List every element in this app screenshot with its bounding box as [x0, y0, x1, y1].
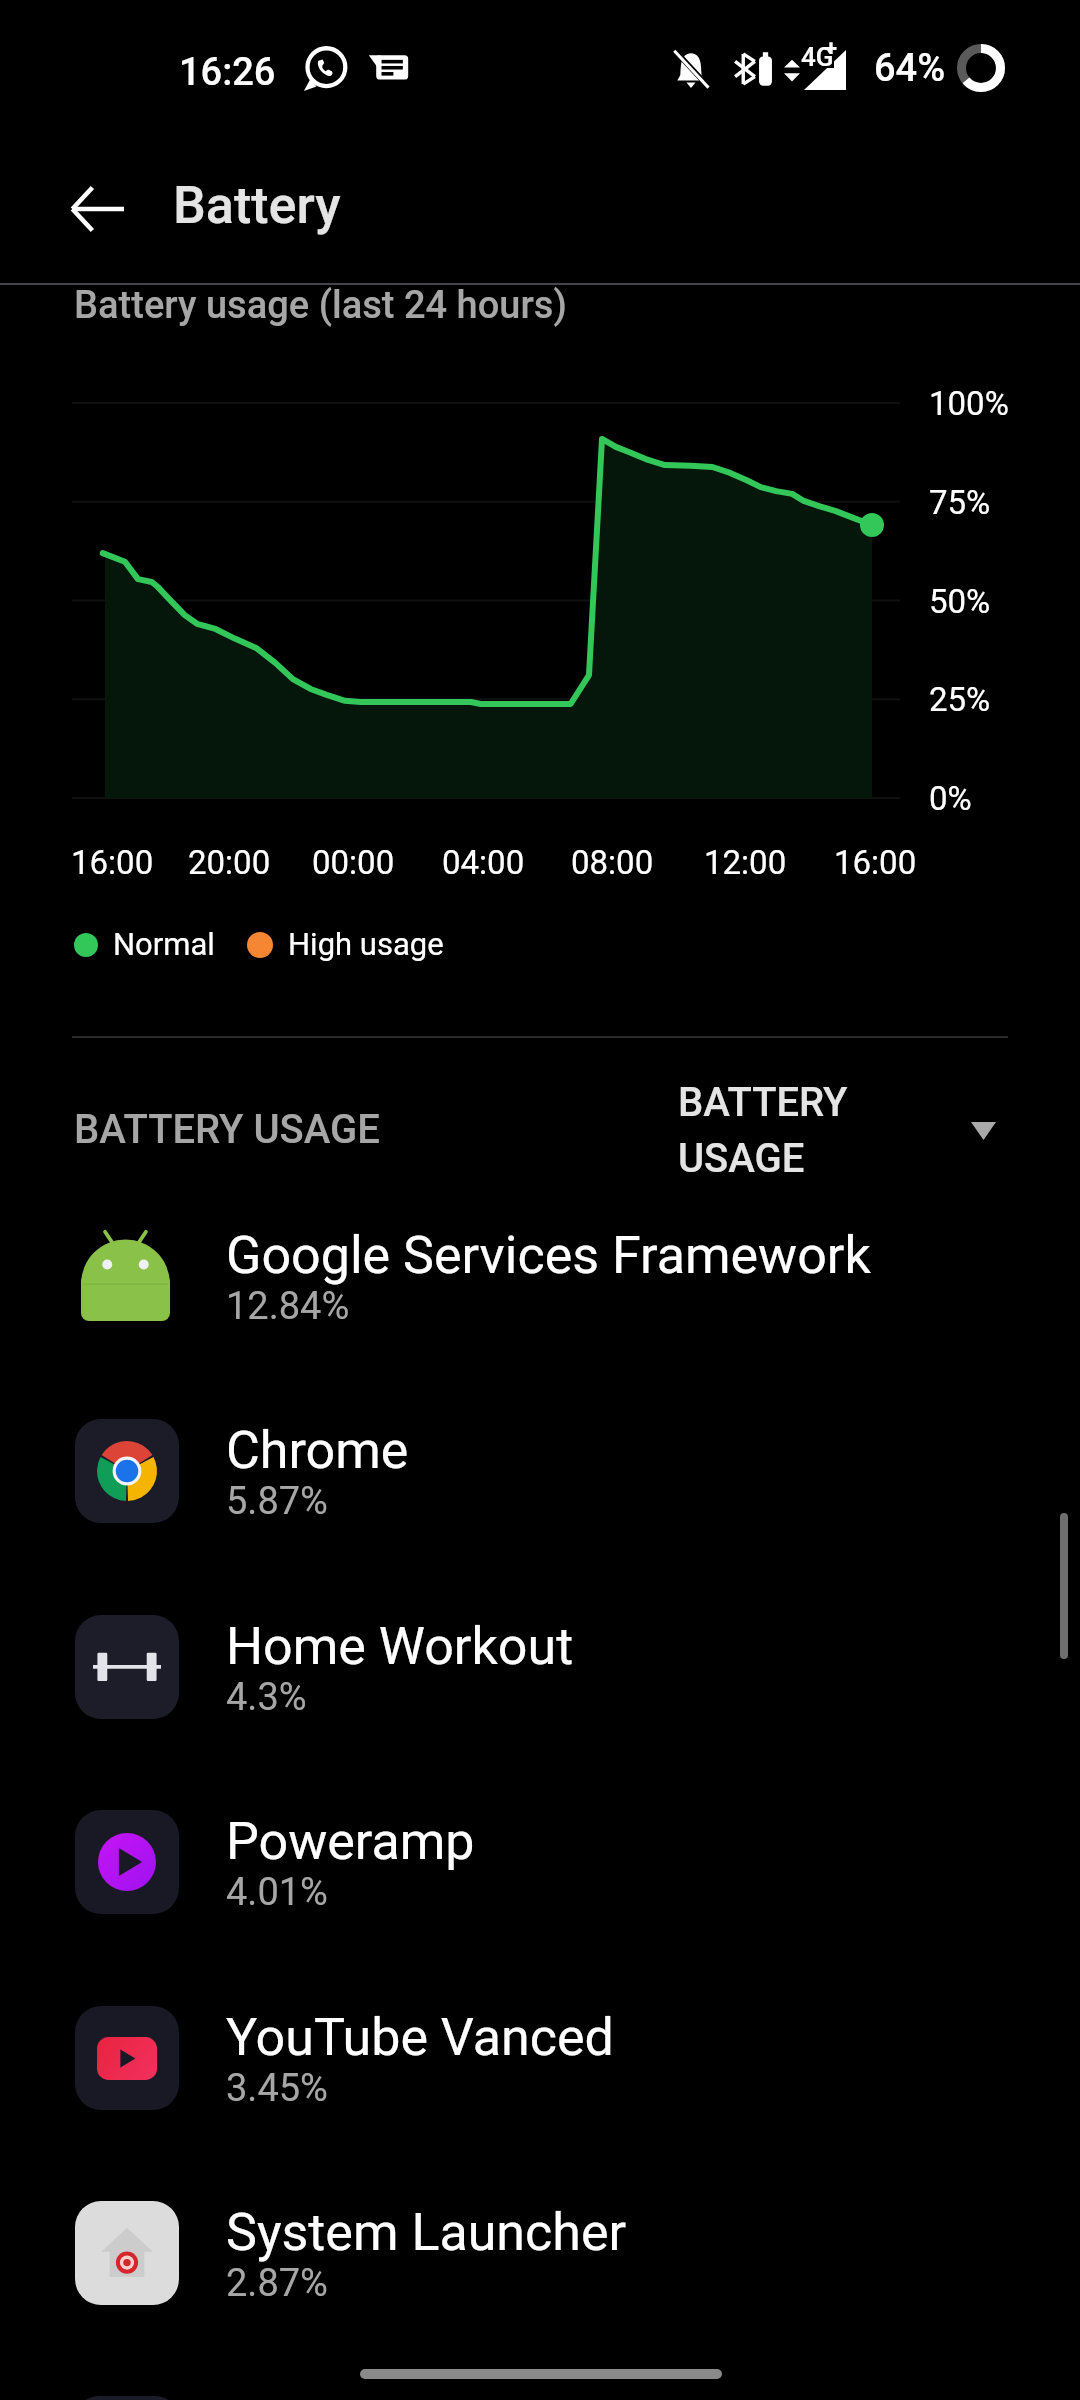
- staticText: High usage: [288, 926, 444, 962]
- staticText: 25%: [929, 680, 991, 719]
- staticText: 50%: [929, 582, 991, 621]
- staticText: Chrome: [226, 1420, 409, 1481]
- button[interactable]: Back: [50, 161, 146, 257]
- staticText: 4.3%: [226, 1675, 307, 1720]
- button[interactable]: BATTERY USAGE: [0, 1060, 1080, 1200]
- staticText: BATTERY USAGE: [678, 1079, 868, 1182]
- button[interactable]: Google Services Framework: [0, 1178, 1080, 1374]
- button[interactable]: System Launcher: [0, 2155, 1080, 2351]
- staticText: 16:26: [179, 50, 276, 95]
- button[interactable]: Poweramp: [0, 1764, 1080, 1960]
- staticText: 2.87%: [226, 2261, 328, 2306]
- staticText: 16:00: [834, 843, 917, 882]
- staticText: 12.84%: [226, 1284, 350, 1329]
- staticText: Google Services Framework: [226, 1225, 871, 1286]
- staticText: 4G: [801, 42, 834, 72]
- staticText: Home Workout: [226, 1616, 574, 1677]
- staticText: 0%: [929, 779, 972, 818]
- staticText: Battery: [173, 175, 341, 236]
- staticText: Normal: [113, 926, 215, 962]
- staticText: 00:00: [312, 843, 395, 882]
- staticText: Poweramp: [226, 1811, 475, 1872]
- button[interactable]: Chrome: [0, 1373, 1080, 1569]
- staticText: 04:00: [442, 843, 525, 882]
- staticText: 100%: [929, 384, 1009, 423]
- button[interactable]: Home Workout: [0, 1569, 1080, 1765]
- staticText: 4.01%: [226, 1870, 328, 1915]
- staticText: System Launcher: [226, 2202, 627, 2263]
- button[interactable]: YouTube Vanced: [0, 1960, 1080, 2156]
- staticText: 3.45%: [226, 2066, 328, 2111]
- staticText: YouTube Vanced: [226, 2007, 614, 2068]
- staticText: 08:00: [571, 843, 654, 882]
- staticText: 16:00: [71, 843, 154, 882]
- staticText: 5.87%: [226, 1479, 328, 1524]
- staticText: 20:00: [188, 843, 271, 882]
- staticText: BATTERY USAGE: [74, 1106, 380, 1153]
- staticText: 75%: [929, 483, 991, 522]
- staticText: 64%: [874, 46, 946, 91]
- staticText: 12:00: [704, 843, 787, 882]
- staticText: Battery usage (last 24 hours): [74, 283, 567, 328]
- staticText: +: [825, 36, 838, 62]
